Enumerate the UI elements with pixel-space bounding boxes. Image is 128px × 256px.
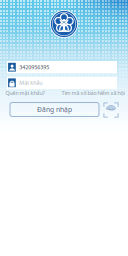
- button[interactable]: Đăng nhập: [10, 102, 99, 116]
- button[interactable]: Mật khẩu: [7, 77, 117, 89]
- staticText: Đăng nhập: [37, 105, 72, 114]
- button[interactable]: Tìm mã số bảo hiểm xã hội: [61, 89, 124, 97]
- staticText: Tìm mã số bảo hiểm xã hội: [61, 89, 124, 97]
- staticText: Mật khẩu: [19, 79, 42, 86]
- button[interactable]: Sign in with fingerprint: [103, 102, 119, 118]
- button[interactable]: Quên mật khẩu?: [5, 89, 44, 97]
- staticText: 3420956395: [19, 64, 49, 71]
- staticText: Quên mật khẩu?: [5, 89, 44, 97]
- button[interactable]: 3420956395: [7, 61, 117, 73]
